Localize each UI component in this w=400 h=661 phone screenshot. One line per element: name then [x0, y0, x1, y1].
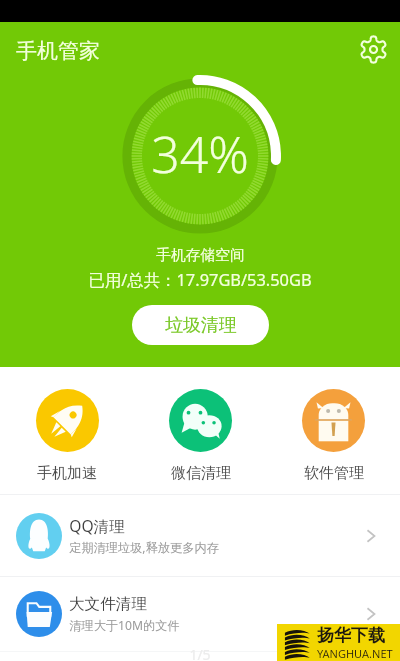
staticText: 定期清理垃圾,释放更多内存	[69, 539, 219, 556]
staticText: 手机加速	[37, 464, 97, 483]
staticText: 大文件清理	[69, 594, 147, 614]
staticText: 手机存储空间	[156, 246, 245, 265]
button[interactable]: 垃圾清理	[132, 305, 269, 345]
staticText: QQ清理	[69, 515, 125, 536]
staticText: YANGHUA.NET	[317, 646, 393, 661]
staticText: 扬华下载	[317, 625, 385, 646]
staticText: 垃圾清理	[165, 314, 237, 337]
button[interactable]: 软件管理	[267, 367, 400, 494]
staticText: 1/5	[189, 645, 211, 661]
staticText: 软件管理	[304, 464, 364, 483]
button[interactable]: QQ清理	[0, 495, 400, 576]
button[interactable]: 大文件清理	[0, 577, 400, 651]
button[interactable]: Settings	[348, 24, 398, 74]
staticText: 微信清理	[171, 464, 231, 483]
staticText: 34%	[151, 120, 249, 188]
button[interactable]: 微信清理	[134, 367, 267, 494]
button[interactable]: 手机加速	[0, 367, 134, 494]
staticText: 已用/总共：17.97GB/53.50GB	[88, 268, 312, 290]
staticText: 清理大于10M的文件	[69, 617, 180, 634]
staticText: 手机管家	[16, 38, 100, 64]
